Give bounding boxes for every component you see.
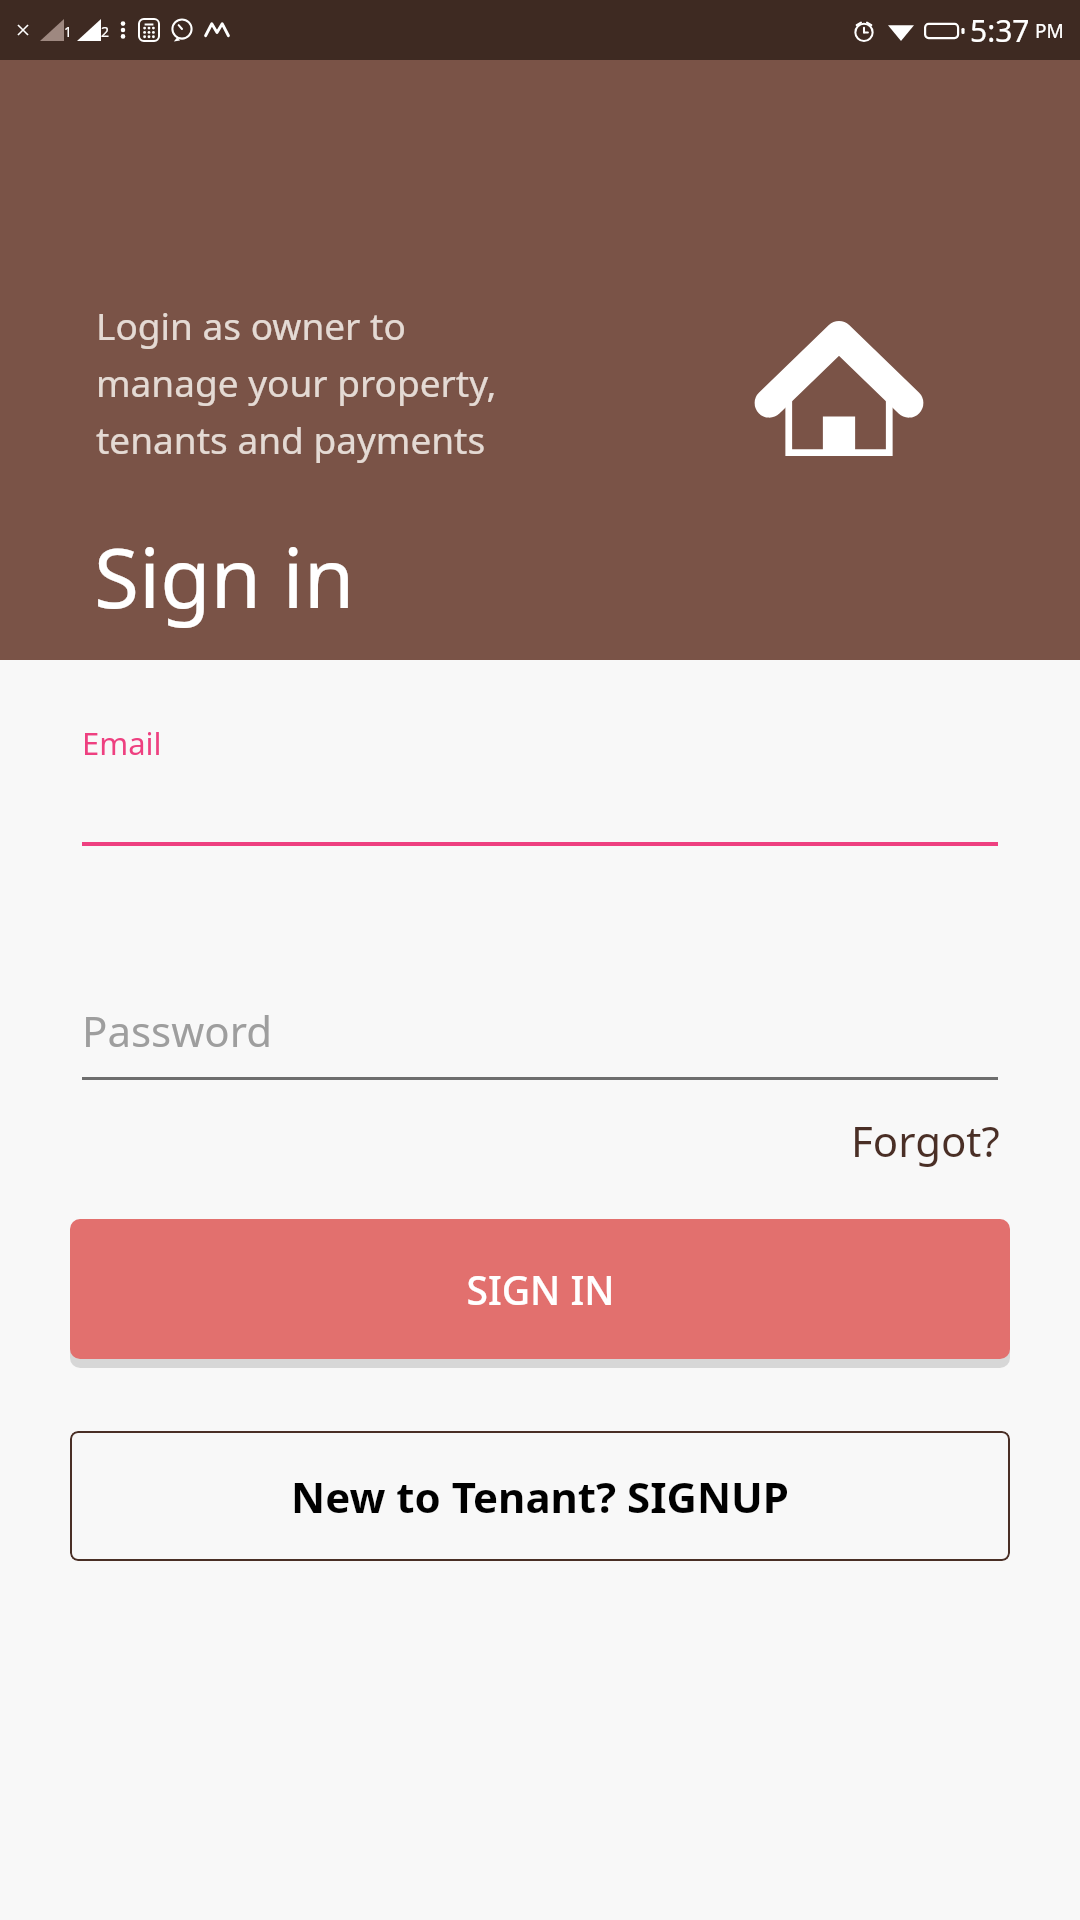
staticText: 1 [64,22,73,41]
button[interactable]: SIGN IN [70,1219,1010,1359]
button[interactable]: Forgot? [847,1106,1004,1175]
staticText: Password [82,1002,272,1059]
button[interactable]: Password [82,1002,998,1080]
button[interactable]: New to Tenant? SIGNUP [70,1431,1010,1561]
staticText: Login as owner to manage your property, … [96,300,497,465]
staticText: Email [82,722,162,764]
staticText: New to Tenant? SIGNUP [291,1468,789,1525]
staticText: Forgot? [851,1112,1000,1169]
staticText: 5:37 [970,10,1030,51]
staticText: 2 [101,22,110,41]
staticText: Sign in [94,520,355,632]
staticText: SIGN IN [466,1263,615,1316]
button[interactable]: Email [82,722,998,846]
staticText: PM [1035,18,1064,44]
